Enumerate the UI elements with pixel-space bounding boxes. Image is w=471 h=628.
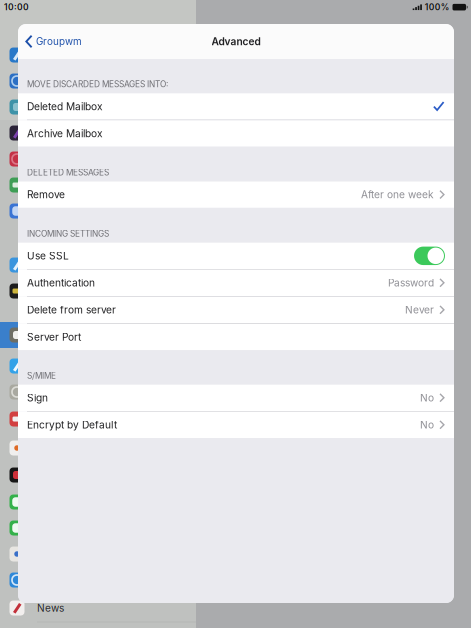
button[interactable]: Encrypt by Default [18, 412, 454, 438]
staticText: No [420, 419, 434, 431]
staticText: Use SSL [27, 250, 69, 262]
staticText: S/MIME [27, 371, 56, 381]
button[interactable]: Settings item [0, 172, 196, 198]
button[interactable]: Server Port [18, 324, 454, 350]
button[interactable]: Settings item [0, 68, 196, 94]
staticText: DELETED MESSAGES [27, 167, 109, 177]
button[interactable]: Settings item [0, 120, 196, 146]
button[interactable]: Settings item [0, 322, 196, 348]
button[interactable]: Settings item [0, 146, 196, 172]
button[interactable]: Settings item [0, 42, 196, 68]
button[interactable]: Settings item [0, 278, 196, 304]
staticText: Sign [27, 392, 48, 404]
button[interactable]: Settings item [0, 515, 196, 541]
button[interactable]: Settings item [0, 379, 196, 405]
button[interactable]: Settings item [0, 94, 196, 120]
button[interactable]: Settings item [0, 567, 196, 593]
staticText: After one week [361, 188, 434, 201]
staticText: Groupwm [36, 35, 82, 47]
button[interactable]: Settings item [0, 462, 196, 488]
staticText: Remove [27, 188, 65, 201]
staticText: Archive Mailbox [27, 127, 103, 140]
button[interactable]: Deleted Mailbox [18, 93, 454, 120]
staticText: Encrypt by Default [27, 419, 117, 431]
staticText: Never [405, 304, 434, 316]
button[interactable]: Use SSL [18, 243, 454, 269]
button[interactable]: Remove [18, 181, 454, 208]
button[interactable]: Settings item [0, 198, 196, 224]
staticText: INCOMING SETTINGS [27, 229, 109, 239]
staticText: Advanced [211, 35, 260, 48]
button[interactable]: News [0, 595, 196, 621]
button[interactable]: Settings item [0, 406, 196, 432]
staticText: 10:00 [4, 2, 29, 12]
button[interactable]: Delete from server [18, 297, 454, 323]
button[interactable]: Settings item [0, 353, 196, 379]
staticText: News [37, 602, 64, 614]
button[interactable]: Authentication [18, 270, 454, 296]
button[interactable]: Groupwm [18, 24, 92, 59]
staticText: Delete from server [27, 304, 116, 316]
button[interactable]: Settings item [0, 489, 196, 515]
button[interactable]: Sign [18, 385, 454, 411]
staticText: 100% [425, 2, 450, 12]
button[interactable]: Archive Mailbox [18, 120, 454, 147]
staticText: Server Port [27, 331, 81, 343]
staticText: Deleted Mailbox [27, 100, 103, 113]
staticText: Authentication [27, 277, 95, 289]
button[interactable]: Settings item [0, 252, 196, 278]
button[interactable]: Settings item [0, 541, 196, 567]
button[interactable]: Settings item [0, 435, 196, 461]
staticText: Password [388, 277, 434, 289]
staticText: No [420, 392, 434, 404]
staticText: MOVE DISCARDED MESSAGES INTO: [27, 79, 168, 89]
